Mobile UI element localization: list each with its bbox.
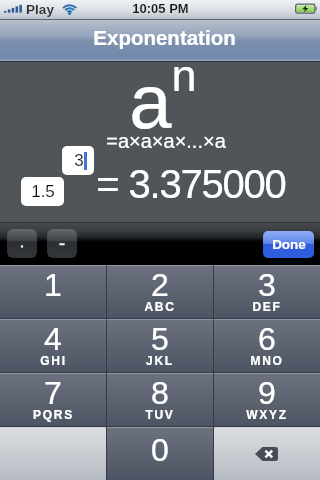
staticText: JKL: [146, 354, 174, 367]
staticText: 1.5: [31, 182, 55, 201]
button[interactable]: Delete: [213, 427, 320, 480]
button[interactable]: 1.5: [21, 177, 64, 206]
button[interactable]: Blank: [0, 427, 106, 480]
staticText: DEF: [252, 300, 282, 313]
staticText: 1: [44, 267, 62, 303]
staticText: PQRS: [33, 408, 74, 421]
staticText: 4: [44, 321, 62, 357]
staticText: 7: [44, 375, 62, 411]
button[interactable]: 2: [106, 265, 213, 318]
staticText: a: [129, 59, 172, 144]
button[interactable]: 6: [213, 319, 320, 372]
staticText: 8: [151, 375, 169, 411]
button[interactable]: Minus: [47, 229, 77, 258]
staticText: 3: [258, 267, 276, 303]
staticText: =a×a×a×...×a: [106, 130, 226, 152]
staticText: Play: [26, 2, 54, 17]
staticText: WXYZ: [246, 408, 288, 421]
staticText: n: [171, 50, 197, 100]
button[interactable]: 3: [213, 265, 320, 318]
button[interactable]: 8: [106, 373, 213, 426]
staticText: 6: [258, 321, 276, 357]
staticText: 2: [151, 267, 169, 303]
button[interactable]: 4: [0, 319, 106, 372]
staticText: MNO: [250, 354, 284, 367]
staticText: 10:05 PM: [132, 1, 189, 16]
staticText: 3: [74, 151, 84, 170]
staticText: GHI: [40, 354, 67, 367]
button[interactable]: 3: [62, 146, 94, 175]
button[interactable]: 7: [0, 373, 106, 426]
staticText: TUV: [145, 408, 175, 421]
staticText: = 3.375000: [96, 162, 286, 207]
button[interactable]: 5: [106, 319, 213, 372]
button[interactable]: 1: [0, 265, 106, 318]
staticText: 0: [151, 432, 169, 468]
staticText: 5: [151, 321, 169, 357]
staticText: ABC: [144, 300, 176, 313]
button[interactable]: 0: [106, 427, 213, 480]
button[interactable]: Decimal point: [7, 229, 37, 258]
staticText: Done: [272, 237, 306, 252]
staticText: Exponentation: [93, 26, 236, 49]
button[interactable]: 9: [213, 373, 320, 426]
staticText: 9: [258, 375, 276, 411]
button[interactable]: Done: [263, 231, 314, 258]
